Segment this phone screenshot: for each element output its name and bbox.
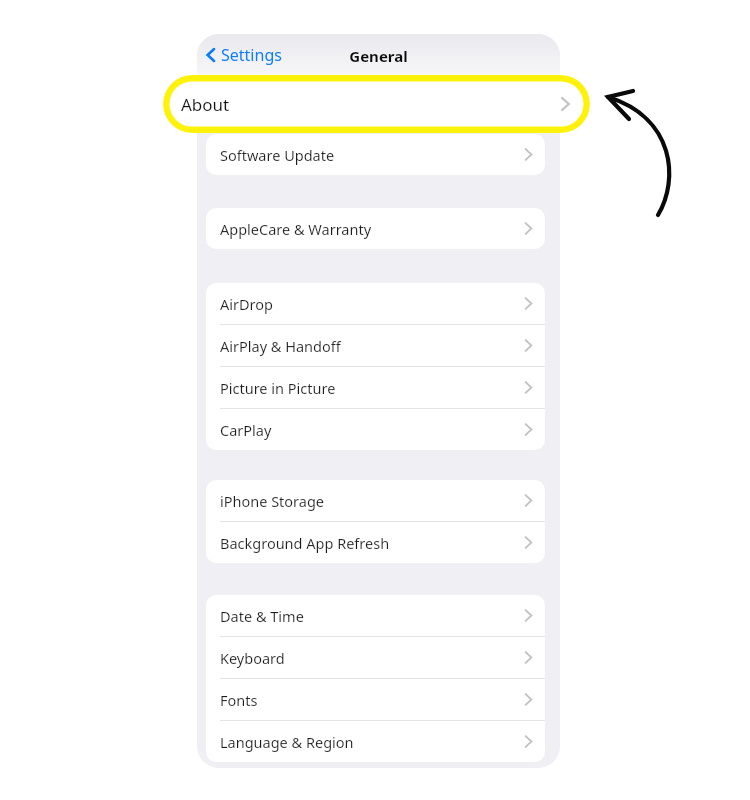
staticText: Date & Time — [220, 606, 304, 626]
button[interactable]: Background App Refresh — [206, 522, 545, 563]
button[interactable]: About — [163, 75, 590, 133]
staticText: About — [181, 93, 230, 116]
button[interactable]: AppleCare & Warranty — [206, 208, 545, 249]
button[interactable]: Settings — [204, 44, 282, 66]
staticText: AirPlay & Handoff — [220, 336, 341, 356]
staticText: Language & Region — [220, 732, 354, 752]
staticText: iPhone Storage — [220, 491, 325, 511]
staticText: AirDrop — [220, 294, 273, 314]
staticText: AppleCare & Warranty — [220, 219, 372, 239]
staticText: Settings — [221, 44, 282, 66]
staticText: About — [220, 87, 262, 107]
staticText: Picture in Picture — [220, 378, 336, 398]
staticText: Fonts — [220, 690, 258, 710]
button[interactable]: AirDrop — [206, 283, 545, 324]
button[interactable]: Picture in Picture — [206, 367, 545, 408]
staticText: Background App Refresh — [220, 533, 390, 553]
button[interactable]: AirPlay & Handoff — [206, 325, 545, 366]
button[interactable]: iPhone Storage — [206, 480, 545, 521]
button[interactable]: Fonts — [206, 679, 545, 720]
button[interactable]: Software Update — [206, 134, 545, 175]
other: Pointer arrow to About — [595, 80, 690, 230]
button[interactable]: CarPlay — [206, 409, 545, 450]
button[interactable]: About — [206, 76, 545, 117]
button[interactable]: Date & Time — [206, 595, 545, 636]
staticText: Keyboard — [220, 648, 285, 668]
button[interactable]: Language & Region — [206, 721, 545, 762]
staticText: CarPlay — [220, 420, 272, 440]
button[interactable]: Keyboard — [206, 637, 545, 678]
staticText: Software Update — [220, 145, 335, 165]
staticText: General — [349, 46, 408, 66]
